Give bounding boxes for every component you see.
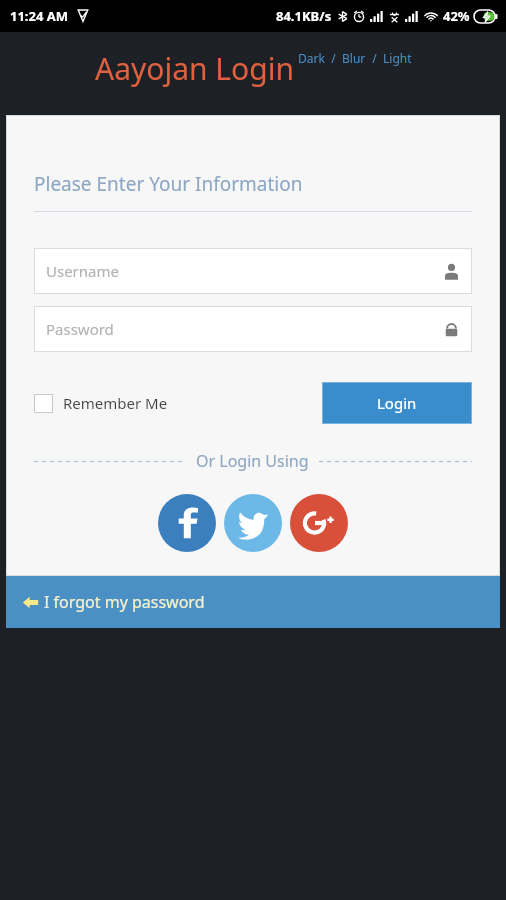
staticText: 84.1KB/s: [276, 7, 332, 25]
button[interactable]: Login: [322, 382, 472, 424]
staticText: Light: [383, 50, 412, 66]
staticText: Password: [46, 319, 114, 339]
staticText: Remember Me: [63, 393, 168, 413]
button[interactable]: Google plus login: [290, 494, 348, 552]
staticText: Username: [46, 261, 119, 281]
button[interactable]: Remember Me: [34, 393, 168, 413]
staticText: Or Login Using: [196, 450, 309, 472]
button[interactable]: Password: [34, 306, 472, 352]
button[interactable]: Blur: [342, 50, 366, 66]
staticText: Login: [377, 393, 417, 413]
button[interactable]: Twitter login: [224, 494, 282, 552]
staticText: Dark: [298, 50, 325, 66]
button[interactable]: I forgot my password: [6, 576, 500, 628]
staticText: Blur: [342, 50, 366, 66]
staticText: 42%: [443, 7, 470, 25]
button[interactable]: Username: [34, 248, 472, 294]
staticText: Aayojan Login: [95, 48, 294, 89]
button[interactable]: Dark: [298, 50, 325, 66]
staticText: /: [325, 50, 342, 66]
staticText: 11:24 AM: [10, 7, 69, 25]
staticText: Please Enter Your Information: [34, 171, 303, 197]
staticText: /: [366, 50, 383, 66]
staticText: I forgot my password: [44, 591, 205, 613]
button[interactable]: Facebook login: [158, 494, 216, 552]
button[interactable]: Light: [383, 50, 412, 66]
